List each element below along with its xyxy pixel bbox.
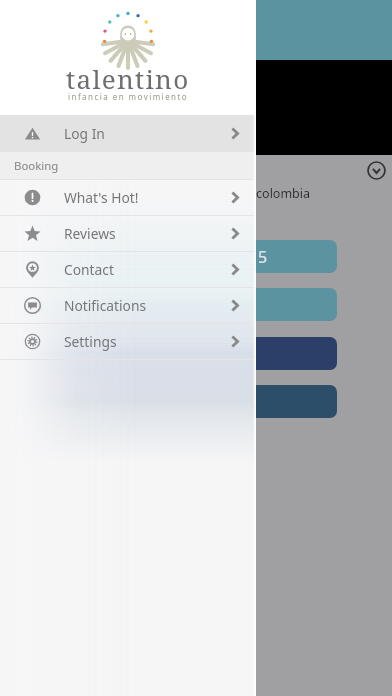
button[interactable]	[16, 337, 337, 370]
staticText: Notifications	[64, 296, 147, 315]
staticText: Settings	[64, 332, 117, 351]
button[interactable]: Notifications	[0, 288, 256, 323]
button[interactable]: Contact	[0, 252, 256, 287]
button[interactable]: Log In	[0, 115, 256, 151]
staticText: What's Hot!	[64, 188, 139, 207]
staticText: talentino	[66, 61, 190, 96]
staticText: 5	[258, 246, 268, 268]
button[interactable]: What's Hot!	[0, 180, 256, 215]
staticText: Booking	[14, 158, 59, 174]
staticText: Bogota, colombia	[207, 185, 311, 202]
button[interactable]	[16, 288, 337, 321]
button[interactable]	[16, 385, 337, 418]
button[interactable]: Settings	[0, 324, 256, 359]
button[interactable]: Reviews	[0, 216, 256, 251]
button[interactable]: Expand	[367, 161, 386, 180]
staticText: Log In	[64, 124, 105, 143]
staticText: Contact	[64, 260, 114, 279]
staticText: Reviews	[64, 224, 116, 243]
button[interactable]: 5	[16, 240, 337, 273]
staticText: infancia en movimiento	[68, 91, 189, 102]
